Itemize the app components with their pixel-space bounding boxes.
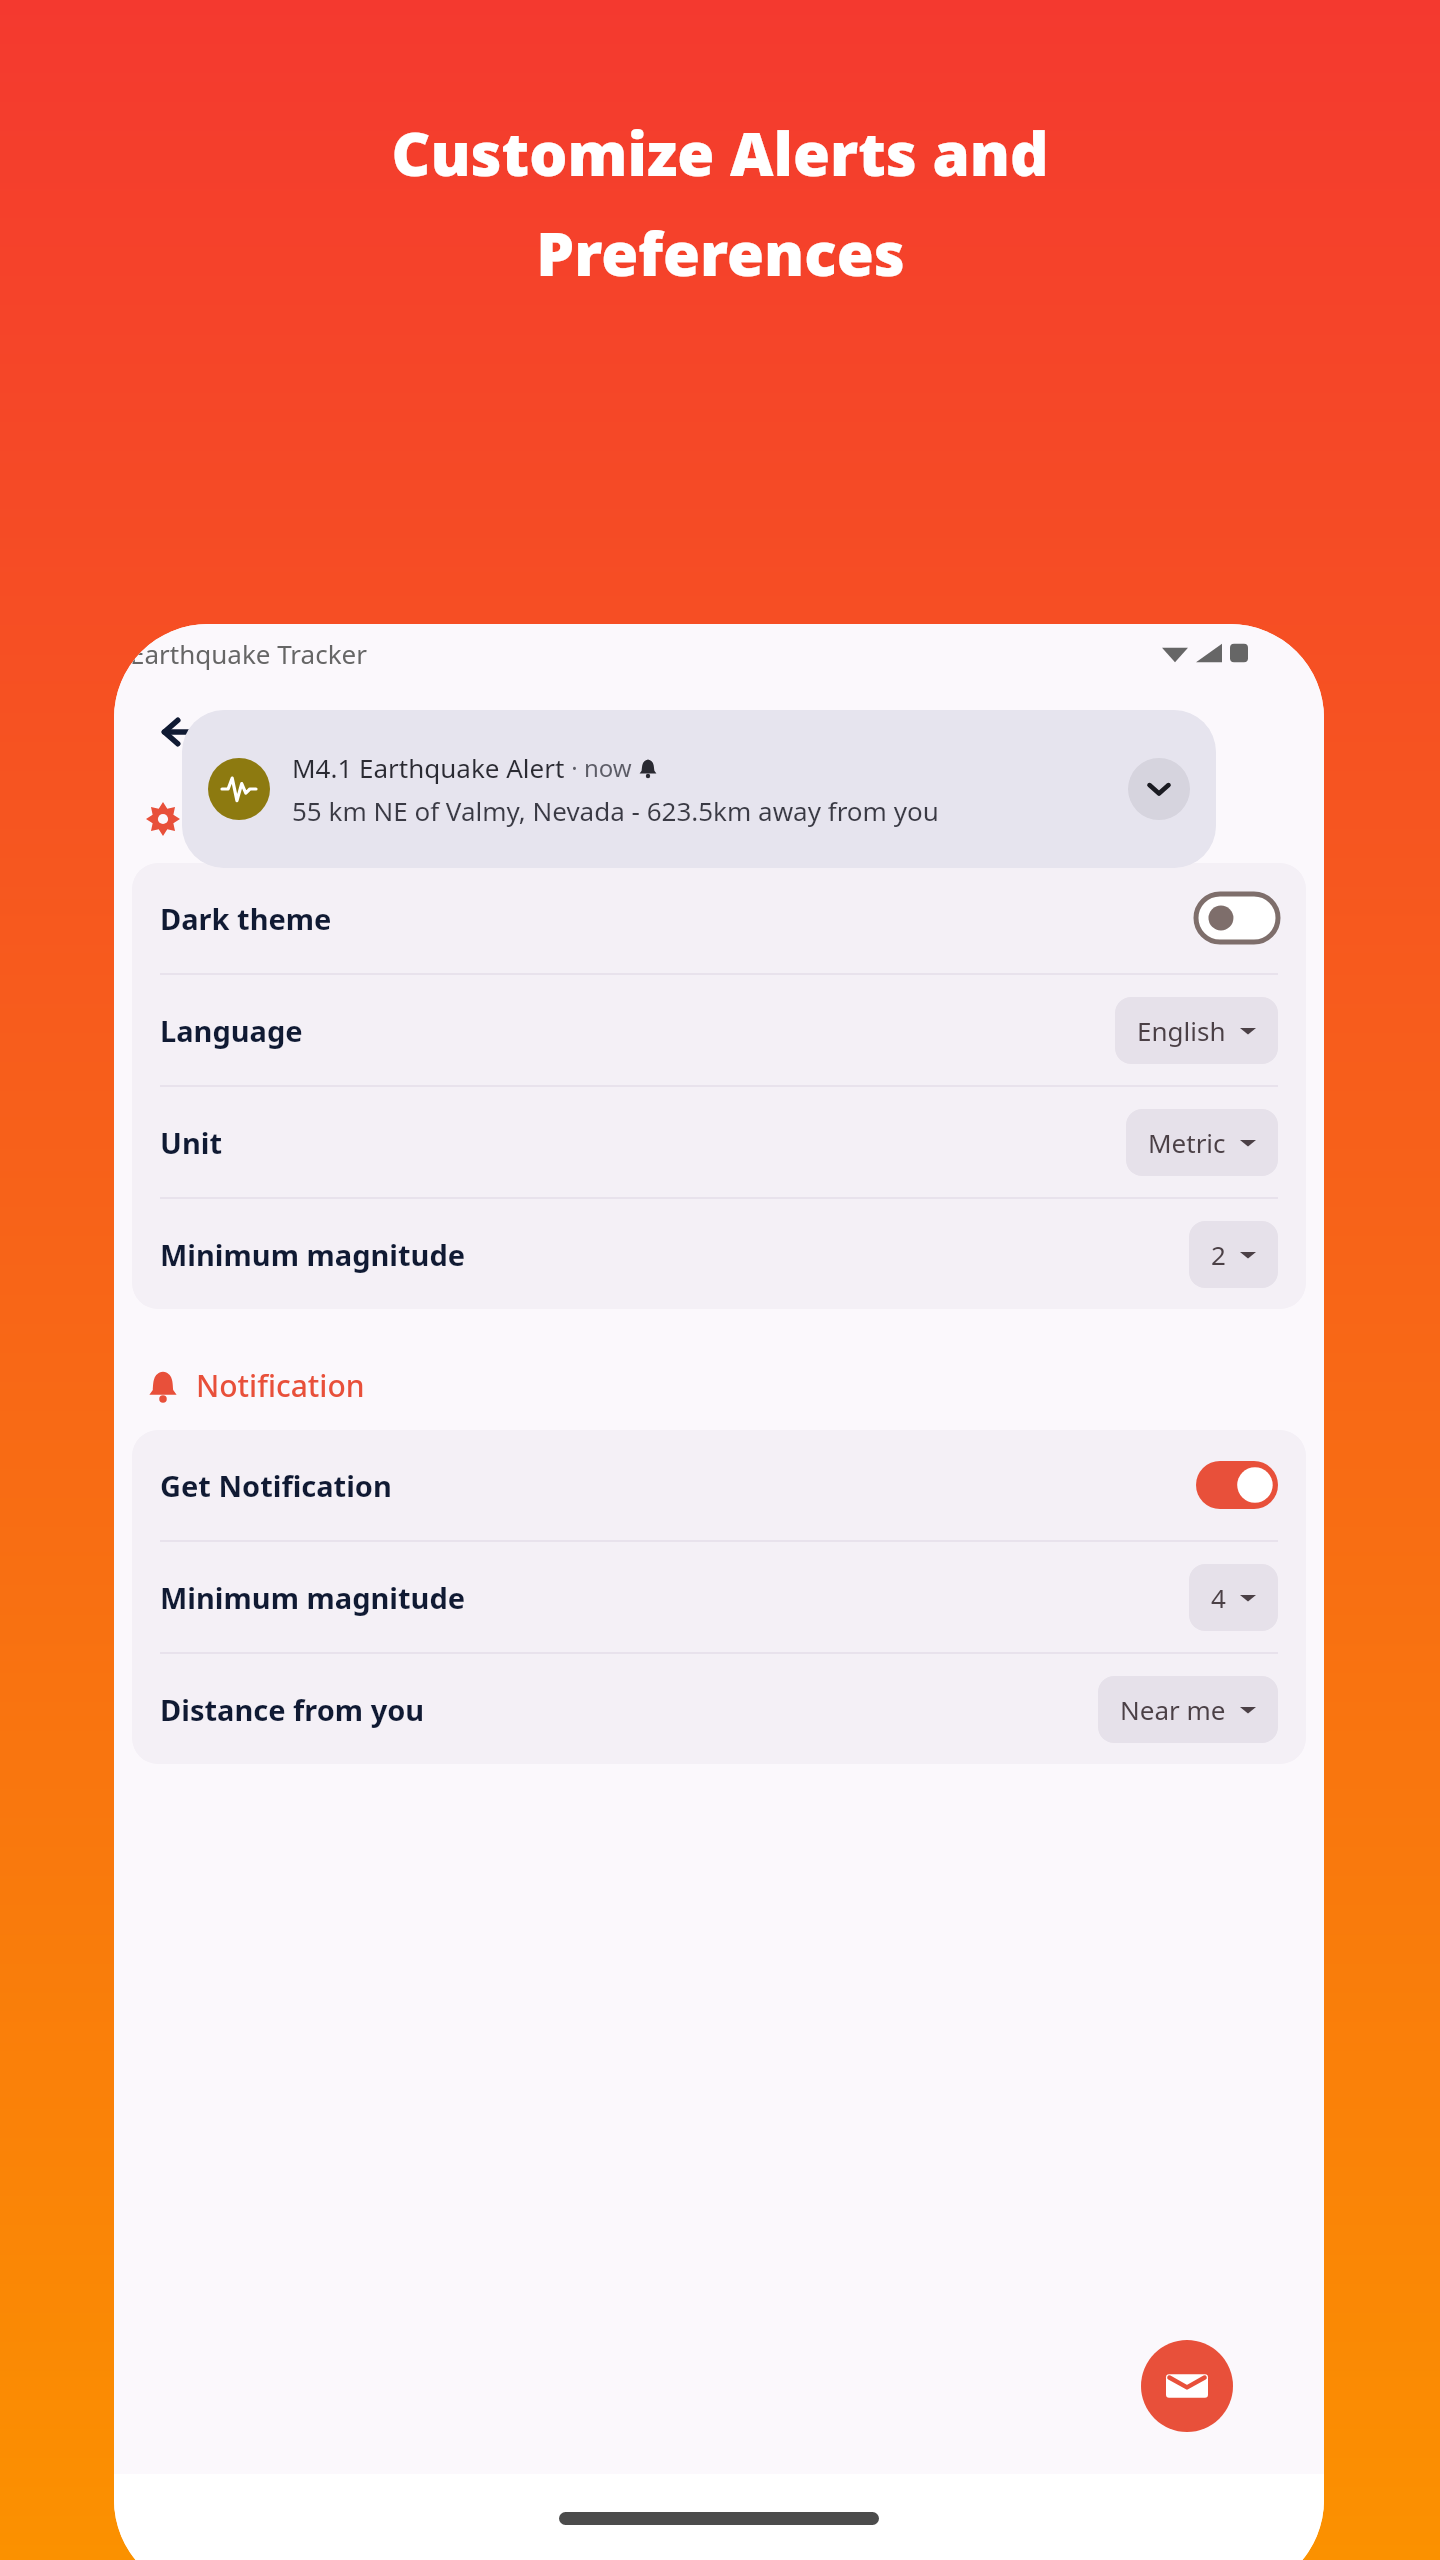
staticText: M4.1 Earthquake Alert bbox=[292, 750, 565, 785]
staticText: 55 km NE of Valmy, Nevada - 623.5km away… bbox=[292, 793, 939, 828]
button[interactable]: M4.1 Earthquake Alert bbox=[182, 710, 1216, 868]
staticText: English bbox=[1137, 1013, 1226, 1048]
button[interactable]: English bbox=[1115, 997, 1278, 1064]
button[interactable]: Metric bbox=[1126, 1109, 1278, 1176]
staticText: Unit bbox=[160, 1123, 1126, 1162]
button[interactable]: 2 bbox=[1189, 1221, 1278, 1288]
staticText: 2 bbox=[1211, 1237, 1226, 1272]
staticText: Metric bbox=[1148, 1125, 1226, 1160]
button[interactable]: Near me bbox=[1098, 1676, 1278, 1743]
button[interactable]: Distance from you bbox=[132, 1654, 1306, 1764]
staticText: Get Notification bbox=[160, 1466, 1196, 1505]
staticText: 4 bbox=[1211, 1580, 1226, 1615]
staticText: Minimum magnitude bbox=[160, 1578, 1189, 1617]
button[interactable]: Minimum magnitude bbox=[132, 1199, 1306, 1309]
staticText: General bbox=[196, 798, 309, 839]
staticText: Settings bbox=[240, 704, 400, 761]
staticText: Notification bbox=[196, 1365, 365, 1406]
button[interactable]: Language bbox=[132, 975, 1306, 1085]
staticText: Earthquake Tracker bbox=[130, 636, 367, 671]
button[interactable]: Unit bbox=[132, 1087, 1306, 1197]
button[interactable]: Back bbox=[140, 690, 224, 774]
button[interactable]: 4 bbox=[1189, 1564, 1278, 1631]
button[interactable]: Get notification toggle, on bbox=[1196, 1461, 1278, 1509]
staticText: · now bbox=[565, 751, 638, 784]
button[interactable]: Dark theme toggle, off bbox=[1196, 894, 1278, 942]
staticText: Near me bbox=[1120, 1692, 1226, 1727]
button[interactable]: Minimum magnitude bbox=[132, 1542, 1306, 1652]
staticText: Preferences bbox=[536, 212, 905, 294]
staticText: Distance from you bbox=[160, 1690, 1098, 1729]
button[interactable]: Dark theme bbox=[132, 863, 1306, 973]
button[interactable]: Expand notification bbox=[1128, 758, 1190, 820]
staticText: Language bbox=[160, 1011, 1115, 1050]
staticText: Minimum magnitude bbox=[160, 1235, 1189, 1274]
button[interactable]: Send email bbox=[1141, 2340, 1233, 2432]
staticText: Customize Alerts and bbox=[391, 112, 1049, 194]
staticText: Dark theme bbox=[160, 899, 1196, 938]
button[interactable]: Get Notification bbox=[132, 1430, 1306, 1540]
